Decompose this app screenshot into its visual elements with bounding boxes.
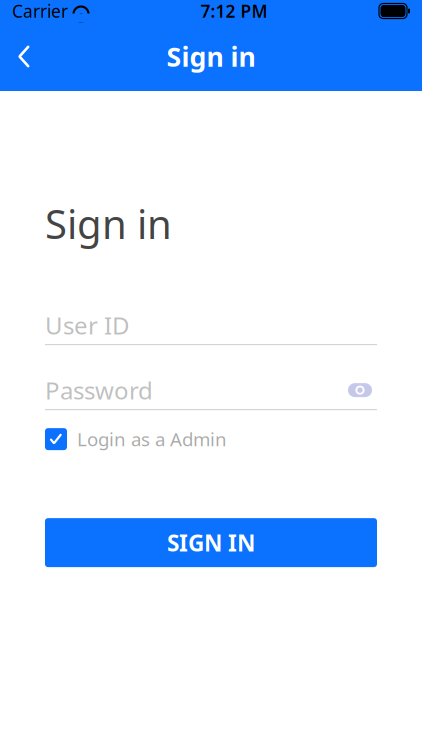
staticText: User ID: [45, 309, 130, 341]
button[interactable]: Show password: [343, 377, 377, 403]
staticText: Sign in: [45, 197, 172, 250]
button[interactable]: Back: [0, 32, 48, 80]
staticText: SIGN IN: [167, 528, 255, 558]
staticText: Login as a Admin: [77, 427, 227, 451]
button[interactable]: SIGN IN: [45, 518, 377, 567]
staticText: Password: [45, 374, 153, 406]
staticText: Carrier: [12, 0, 68, 22]
staticText: Sign in: [166, 39, 255, 74]
staticText: 7:12 PM: [200, 0, 267, 22]
button[interactable]: Login as a Admin: [45, 424, 377, 454]
